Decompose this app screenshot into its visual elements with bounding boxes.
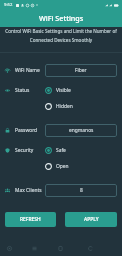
button[interactable]: APPLY bbox=[65, 212, 117, 227]
button[interactable]: Visible bbox=[45, 87, 71, 94]
staticText: Control WiFi Basic Settings and Limit th… bbox=[2, 28, 120, 43]
button[interactable]: Hidden bbox=[45, 103, 73, 110]
button[interactable]: Fiber bbox=[45, 64, 117, 77]
staticText: Status bbox=[15, 87, 30, 94]
staticText: WiFi Settings bbox=[39, 13, 84, 23]
staticText: WiFi Name bbox=[15, 67, 40, 74]
staticText: Password bbox=[15, 127, 38, 134]
button[interactable]: Open bbox=[45, 163, 69, 170]
staticText: REFRESH bbox=[20, 216, 41, 223]
staticText: engmanos bbox=[69, 127, 94, 134]
button[interactable]: Recents bbox=[27, 240, 41, 256]
staticText: 9:52 bbox=[4, 2, 13, 8]
staticText: Max Clients bbox=[15, 187, 42, 194]
button[interactable]: REFRESH bbox=[5, 212, 56, 227]
button[interactable]: Back bbox=[83, 240, 97, 256]
staticText: Hidden bbox=[56, 103, 73, 110]
button[interactable]: Home bbox=[53, 240, 67, 256]
staticText: Safe bbox=[56, 147, 66, 154]
button[interactable]: Safe bbox=[45, 147, 66, 154]
staticText: 8 bbox=[80, 187, 83, 194]
button[interactable]: engmanos bbox=[45, 124, 117, 137]
staticText: Security bbox=[15, 147, 34, 154]
button[interactable]: Assistant bbox=[2, 240, 16, 256]
staticText: Open bbox=[56, 163, 69, 170]
staticText: Fiber bbox=[75, 67, 87, 74]
button[interactable]: 8 bbox=[45, 184, 117, 197]
staticText: Visible bbox=[56, 87, 71, 94]
staticText: APPLY bbox=[84, 216, 99, 223]
